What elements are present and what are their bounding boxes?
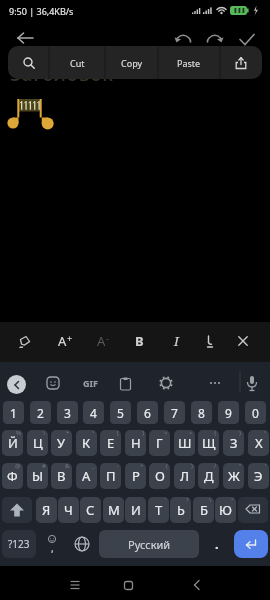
button[interactable]: О (149, 463, 170, 489)
button[interactable]: М (103, 497, 124, 523)
staticText: I (174, 332, 179, 350)
button[interactable] (204, 30, 226, 48)
staticText: Х (255, 434, 263, 452)
staticText: ? (186, 497, 189, 504)
button[interactable] (238, 497, 268, 523)
button[interactable]: 7 (164, 401, 185, 424)
button[interactable]: Л (174, 463, 195, 489)
button[interactable]: Б (193, 497, 214, 523)
staticText: - (117, 463, 119, 470)
button[interactable] (232, 330, 254, 352)
button[interactable] (117, 574, 139, 596)
button[interactable] (13, 330, 35, 352)
button[interactable] (115, 373, 135, 393)
staticText: Ч (64, 501, 73, 519)
button[interactable]: Т (148, 497, 169, 523)
button[interactable]: 4 (83, 401, 104, 424)
button[interactable]: К (76, 430, 97, 456)
staticText: Б (200, 501, 208, 519)
staticText: ° (231, 497, 234, 504)
button[interactable] (234, 530, 268, 558)
staticText: 2 (37, 405, 44, 421)
button[interactable]: Ю (215, 497, 236, 523)
staticText: + (67, 332, 73, 344)
button[interactable]: Русский (99, 530, 199, 558)
button[interactable]: Cut (49, 46, 105, 79)
button[interactable]: Ж (223, 463, 244, 489)
button[interactable]: 0 (245, 401, 266, 424)
button[interactable]: Й (2, 430, 23, 456)
button[interactable]: Э (248, 463, 269, 489)
button[interactable] (156, 373, 176, 393)
button[interactable]: 8 (191, 401, 212, 424)
button[interactable]: Ф (2, 463, 23, 489)
staticText: + (140, 463, 144, 470)
staticText: ( (166, 463, 168, 470)
staticText: 6 (144, 405, 151, 421)
staticText: ?123 (8, 537, 30, 551)
button[interactable]: Ч (58, 497, 79, 523)
staticText: Р (132, 467, 140, 485)
button[interactable]: Paste (158, 46, 220, 79)
button[interactable]: Х (248, 430, 269, 456)
button[interactable] (172, 30, 194, 48)
button[interactable] (220, 46, 262, 79)
staticText: ' (165, 497, 167, 504)
button[interactable]: 3 (57, 401, 78, 424)
button[interactable]: GIF (78, 373, 102, 393)
staticText: С (86, 501, 95, 519)
button[interactable]: 2 (30, 401, 51, 424)
button[interactable]: З (223, 430, 244, 456)
button[interactable]: Д (198, 463, 219, 489)
button[interactable]: Ы (27, 463, 48, 489)
button[interactable] (7, 375, 26, 394)
staticText: 8 (198, 405, 205, 421)
button[interactable]: С (80, 497, 101, 523)
button[interactable]: Г (149, 430, 170, 456)
button[interactable] (243, 372, 261, 394)
button[interactable]: ?123 (2, 530, 36, 558)
button[interactable]: П (100, 463, 121, 489)
staticText: ) (191, 463, 193, 470)
button[interactable]: Р (125, 463, 146, 489)
button[interactable]: I (165, 330, 187, 352)
button[interactable]: Щ (198, 430, 219, 456)
button[interactable]: A (90, 330, 116, 352)
staticText: Т (155, 501, 163, 519)
button[interactable] (186, 574, 208, 596)
staticText: ' (265, 463, 267, 470)
button[interactable]: У (51, 430, 72, 456)
button[interactable]: Ь (170, 497, 191, 523)
button[interactable]: 9 (218, 401, 239, 424)
button[interactable]: Copy (105, 46, 158, 79)
button[interactable] (12, 28, 40, 48)
button[interactable]: B (128, 330, 150, 352)
button[interactable]: Ш (174, 430, 195, 456)
staticText: & (65, 463, 70, 470)
button[interactable]: Ц (27, 430, 48, 456)
button[interactable]: В (51, 463, 72, 489)
button[interactable]: , (40, 530, 64, 558)
staticText: 5 (117, 405, 124, 421)
button[interactable] (199, 330, 221, 352)
button[interactable] (205, 373, 225, 393)
button[interactable]: Н (125, 430, 146, 456)
button[interactable]: 5 (110, 401, 131, 424)
button[interactable] (2, 497, 32, 523)
button[interactable]: Я (36, 497, 57, 523)
button[interactable] (43, 373, 63, 393)
staticText: Я (42, 501, 51, 519)
button[interactable]: А (76, 463, 97, 489)
button[interactable] (68, 530, 95, 558)
button[interactable] (236, 30, 258, 48)
button[interactable]: 1 (3, 401, 24, 424)
button[interactable]: . (203, 530, 230, 558)
staticText: З (230, 434, 238, 452)
button[interactable]: A (52, 330, 78, 352)
staticText: Русский (128, 537, 171, 552)
button[interactable] (8, 46, 49, 79)
button[interactable]: 6 (137, 401, 158, 424)
button[interactable] (64, 574, 86, 596)
button[interactable]: Е (100, 430, 121, 456)
button[interactable]: И (125, 497, 146, 523)
